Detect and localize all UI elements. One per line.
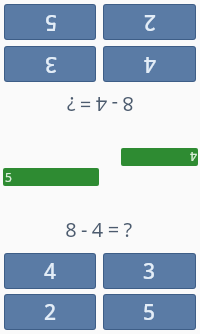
staticText: 4 xyxy=(44,257,57,286)
button[interactable]: 3 xyxy=(104,254,195,288)
staticText: 5 xyxy=(44,8,57,37)
staticText: 2 xyxy=(44,298,57,327)
button[interactable]: 2 xyxy=(5,295,95,329)
staticText: 3 xyxy=(143,257,156,286)
staticText: 4 xyxy=(190,149,197,165)
other: Player 1 score 4 xyxy=(121,148,198,166)
button[interactable]: 2 xyxy=(104,5,195,39)
button[interactable]: 5 xyxy=(5,5,95,39)
staticText: 5 xyxy=(143,298,156,327)
staticText: 5 xyxy=(5,169,12,185)
other: Player 2 score 5 xyxy=(3,168,99,186)
staticText: 3 xyxy=(44,50,57,79)
staticText: 2 xyxy=(143,8,156,37)
button[interactable]: 4 xyxy=(104,47,195,81)
staticText: 8 - 4 = ? xyxy=(67,91,134,118)
button[interactable]: 3 xyxy=(5,47,95,81)
staticText: 4 xyxy=(143,50,156,79)
button[interactable]: 5 xyxy=(104,295,195,329)
staticText: 8 - 4 = ? xyxy=(65,216,132,243)
button[interactable]: 4 xyxy=(5,254,95,288)
